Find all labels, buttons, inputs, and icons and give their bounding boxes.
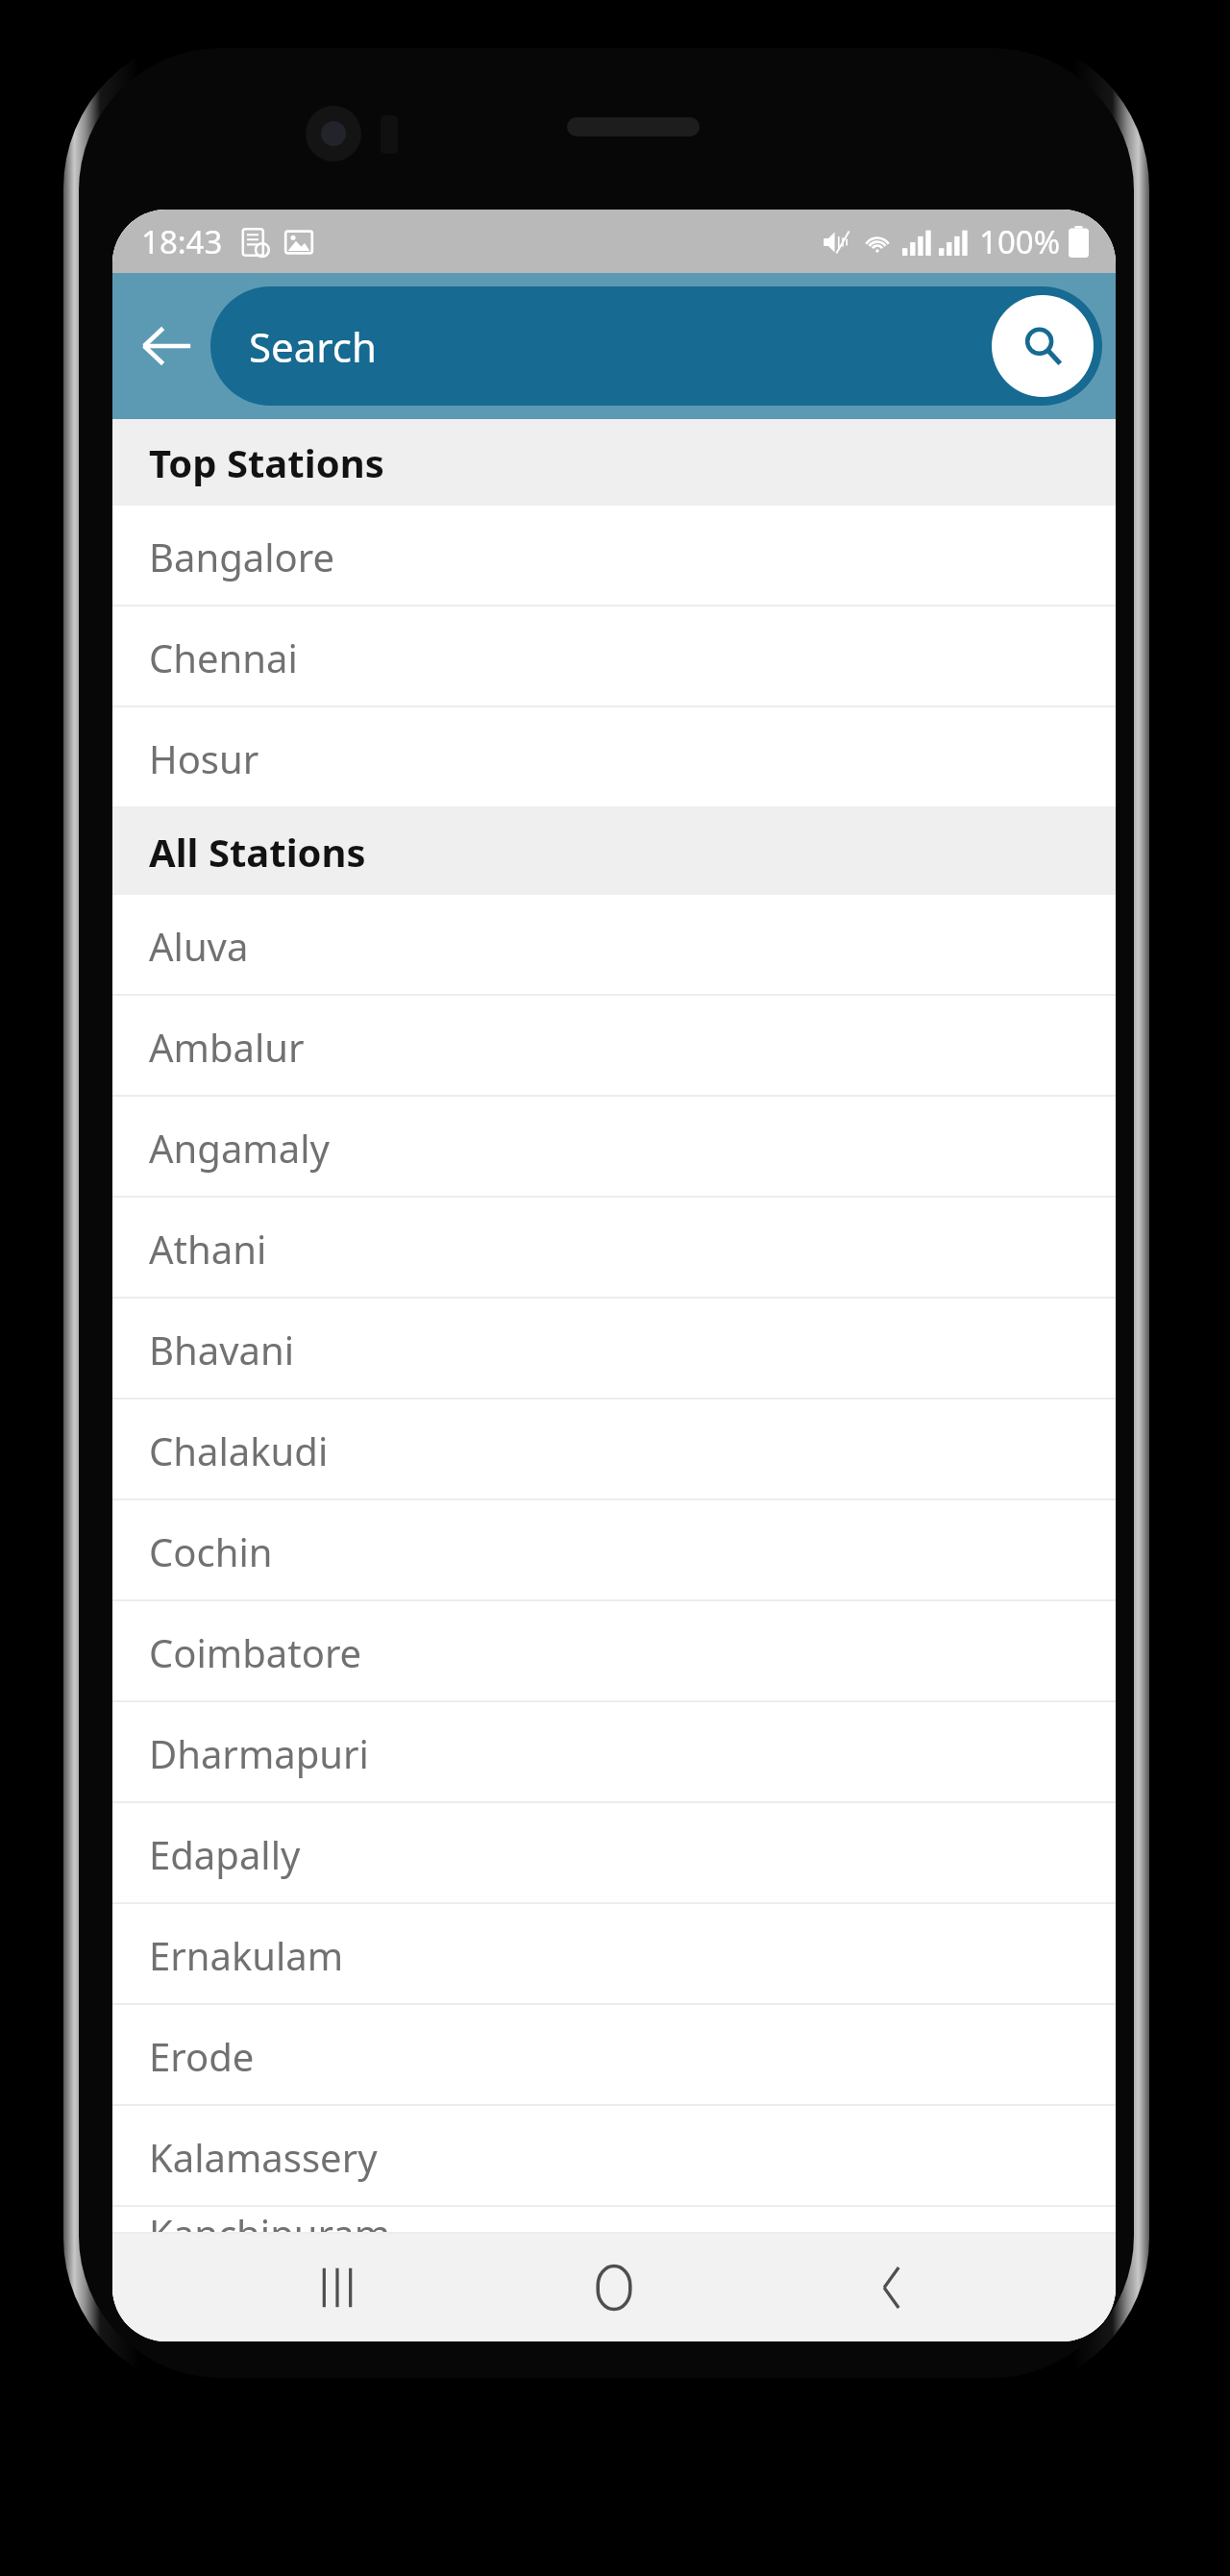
button[interactable]: Athani [112,1198,1116,1299]
button[interactable]: Back [839,2235,945,2341]
button[interactable]: Recents [284,2235,390,2341]
staticText: Cochin [149,1525,273,1577]
button[interactable]: Kanchipuram [112,2207,1116,2234]
button[interactable]: Erode [112,2005,1116,2106]
staticText: Ambalur [149,1021,305,1073]
button[interactable]: Chalakudi [112,1399,1116,1500]
staticText: Edapally [149,1828,301,1880]
staticText: Bangalore [149,531,334,582]
button[interactable]: Bangalore [112,506,1116,607]
staticText: Chalakudi [149,1424,329,1476]
staticText: Athani [149,1223,267,1275]
button[interactable]: Aluva [112,895,1116,996]
staticText: Coimbatore [149,1626,362,1678]
button[interactable]: Search [992,295,1094,397]
staticText: Search [249,319,377,374]
staticText: Chennai [149,632,298,683]
button[interactable]: Cochin [112,1500,1116,1601]
button[interactable]: All Stations [112,808,1116,895]
button[interactable]: Chennai [112,607,1116,707]
button[interactable]: Back [126,306,207,386]
staticText: Bhavani [149,1324,294,1375]
staticText: Erode [149,2030,255,2082]
button[interactable]: Hosur [112,707,1116,808]
staticText: Kanchipuram [149,2207,391,2234]
button[interactable]: Ernakulam [112,1904,1116,2005]
button[interactable]: Coimbatore [112,1601,1116,1702]
staticText: 100% [979,220,1061,263]
button[interactable]: Angamaly [112,1097,1116,1198]
staticText: Dharmapuri [149,1727,369,1779]
staticText: Top Stations [149,436,384,488]
staticText: Hosur [149,732,259,784]
staticText: 18:43 [141,220,223,263]
staticText: Angamaly [149,1122,330,1174]
button[interactable]: Kalamassery [112,2106,1116,2207]
button[interactable]: Top Stations [112,419,1116,506]
button[interactable]: Dharmapuri [112,1702,1116,1803]
button[interactable]: Ambalur [112,996,1116,1097]
staticText: All Stations [149,826,366,878]
button[interactable]: Bhavani [112,1299,1116,1399]
button[interactable]: Edapally [112,1803,1116,1904]
button[interactable]: Home [561,2235,667,2341]
button[interactable]: Search [210,286,1102,406]
staticText: Aluva [149,920,249,972]
staticText: Kalamassery [149,2131,378,2183]
staticText: Ernakulam [149,1929,344,1981]
